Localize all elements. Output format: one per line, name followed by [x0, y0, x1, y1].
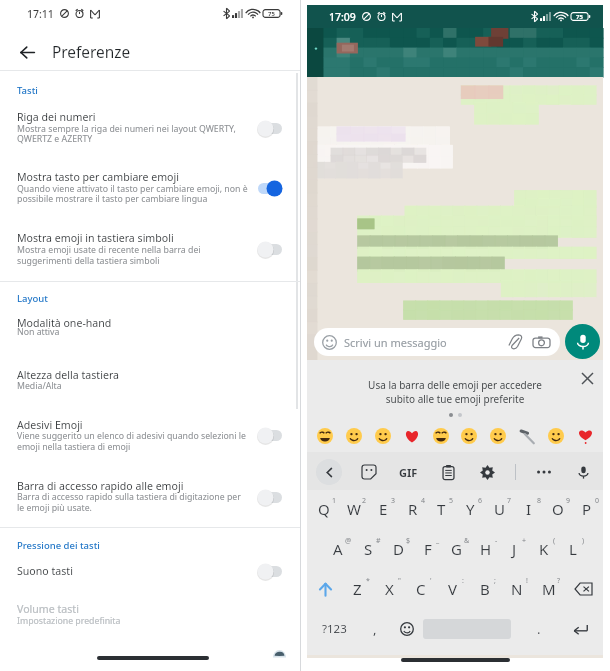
- staticText: Layout: [17, 292, 48, 305]
- button[interactable]: M: [533, 569, 565, 609]
- button[interactable]: Emoji: [401, 425, 423, 447]
- button[interactable]: D: [383, 529, 413, 569]
- button[interactable]: Emoji: [372, 425, 394, 447]
- staticText: Viene suggerito un elenco di adesivi qua…: [17, 430, 246, 442]
- staticText: ": [398, 576, 401, 586]
- staticText: Mostra emoji in tastiera simboli: [17, 231, 174, 245]
- button[interactable]: GIF: [397, 463, 420, 482]
- staticText: W: [347, 499, 361, 519]
- staticText: 1: [332, 496, 337, 506]
- button[interactable]: Voice input: [572, 461, 594, 483]
- button[interactable]: Toggle off: [257, 489, 283, 506]
- staticText: Preferenze: [52, 42, 131, 63]
- staticText: Usa la barra delle emoji per accedere su…: [368, 378, 542, 406]
- button[interactable]: A: [323, 529, 353, 569]
- staticText: 9: [566, 496, 571, 506]
- button[interactable]: ?123: [309, 609, 359, 649]
- staticText: @: [345, 536, 352, 546]
- button[interactable]: ,: [359, 609, 391, 649]
- button[interactable]: Back: [316, 459, 342, 485]
- button[interactable]: Settings: [476, 461, 498, 483]
- staticText: Mostra emoji usate di recente nella barr…: [17, 244, 201, 256]
- button[interactable]: K: [529, 529, 558, 569]
- button[interactable]: Backspace: [565, 569, 601, 609]
- staticText: Adesivi Emoji: [17, 418, 83, 432]
- button[interactable]: X: [373, 569, 405, 609]
- staticText: B: [480, 579, 490, 599]
- button[interactable]: Toggle on: [257, 180, 283, 197]
- button[interactable]: More options: [533, 461, 555, 483]
- button[interactable]: P: [572, 489, 601, 529]
- button[interactable]: Z: [341, 569, 373, 609]
- staticText: F: [424, 539, 432, 559]
- button[interactable]: Enter: [559, 609, 601, 649]
- staticText: ?123: [322, 621, 347, 637]
- button[interactable]: E: [369, 489, 398, 529]
- staticText: 4: [421, 496, 426, 506]
- button[interactable]: R: [398, 489, 427, 529]
- button[interactable]: Back: [7, 32, 48, 72]
- staticText: I: [526, 499, 532, 519]
- staticText: P: [582, 499, 592, 519]
- button[interactable]: Close: [577, 368, 597, 388]
- staticText: Volume tasti: [17, 602, 79, 616]
- staticText: Riga dei numeri: [17, 110, 96, 124]
- button[interactable]: O: [543, 489, 572, 529]
- button[interactable]: N: [501, 569, 533, 609]
- staticText: V: [448, 579, 458, 599]
- button[interactable]: Y: [456, 489, 485, 529]
- button[interactable]: Scrivi un messaggio: [314, 328, 560, 356]
- button[interactable]: Emoji: [545, 425, 567, 447]
- staticText: Z: [353, 579, 362, 599]
- staticText: (: [553, 536, 556, 546]
- button[interactable]: I: [514, 489, 543, 529]
- button[interactable]: Emoji: [343, 425, 365, 447]
- staticText: *: [366, 576, 370, 586]
- staticText: Pressione dei tasti: [17, 539, 100, 552]
- button[interactable]: Emoji: [391, 609, 423, 649]
- button[interactable]: Stickers: [358, 461, 380, 483]
- button[interactable]: Emoji: [574, 425, 596, 447]
- staticText: ): [582, 536, 585, 546]
- staticText: .: [537, 620, 541, 638]
- button[interactable]: .: [519, 609, 559, 649]
- button[interactable]: V: [437, 569, 469, 609]
- staticText: 17:11: [27, 7, 54, 21]
- button[interactable]: B: [469, 569, 501, 609]
- staticText: Modalità one-hand: [17, 316, 112, 330]
- button[interactable]: L: [558, 529, 587, 569]
- button[interactable]: Shift: [309, 569, 341, 609]
- staticText: Mostra tasto per cambiare emoji: [17, 170, 179, 184]
- button[interactable]: C: [405, 569, 437, 609]
- staticText: #: [376, 536, 381, 546]
- staticText: D: [393, 539, 404, 559]
- button[interactable]: F: [413, 529, 442, 569]
- button[interactable]: Clipboard: [437, 461, 459, 483]
- button[interactable]: Toggle off: [257, 563, 283, 580]
- button[interactable]: Attach: [507, 334, 523, 350]
- button[interactable]: Voice message: [565, 324, 600, 359]
- button[interactable]: T: [427, 489, 456, 529]
- button[interactable]: Toggle off: [257, 427, 283, 444]
- staticText: 7: [507, 496, 512, 506]
- button[interactable]: G: [442, 529, 471, 569]
- button[interactable]: W: [339, 489, 369, 529]
- staticText: O: [552, 499, 564, 519]
- button[interactable]: Toggle off: [257, 241, 283, 258]
- button[interactable]: Emoji: [487, 425, 509, 447]
- button[interactable]: Toggle off: [257, 120, 283, 137]
- button[interactable]: Camera: [533, 334, 550, 351]
- button[interactable]: Emoji: [430, 425, 452, 447]
- staticText: Y: [466, 499, 475, 519]
- button[interactable]: Q: [309, 489, 339, 529]
- staticText: 8: [537, 496, 542, 506]
- button[interactable]: U: [485, 489, 514, 529]
- button[interactable]: S: [353, 529, 383, 569]
- button[interactable]: H: [471, 529, 500, 569]
- button[interactable]: Emoji: [516, 425, 538, 447]
- button[interactable]: Emoji: [458, 425, 480, 447]
- button[interactable]: J: [500, 529, 529, 569]
- staticText: GIF: [399, 465, 418, 480]
- button[interactable]: Emoji: [314, 425, 336, 447]
